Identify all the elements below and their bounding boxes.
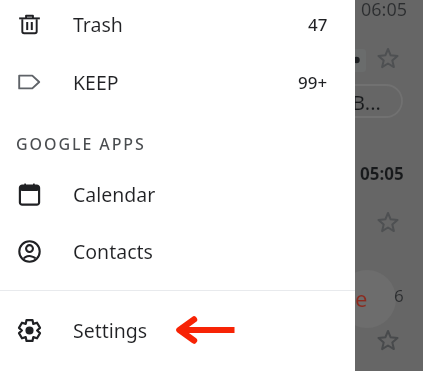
staticText: GOOGLE APPS [16, 133, 146, 155]
staticText: 06:05 [361, 0, 408, 22]
staticText: Settings [73, 317, 148, 344]
staticText: 99+ [298, 71, 328, 94]
button[interactable]: Calendar [0, 165, 355, 223]
other: Annotation arrow pointing to Settings [174, 313, 238, 347]
staticText: 6 [394, 284, 404, 307]
button[interactable]: Trash [0, 0, 355, 53]
button[interactable]: Settings [0, 301, 355, 359]
staticText: Trash [73, 11, 123, 38]
button[interactable]: Contacts [0, 222, 355, 280]
button[interactable]: KEEP [0, 53, 355, 111]
staticText: B... [352, 89, 381, 116]
staticText: 05:05 [360, 162, 404, 185]
staticText: 47 [308, 13, 328, 36]
staticText: Calendar [73, 181, 156, 208]
staticText: Contacts [73, 238, 153, 265]
staticText: KEEP [73, 69, 119, 96]
staticText: e [355, 283, 368, 313]
